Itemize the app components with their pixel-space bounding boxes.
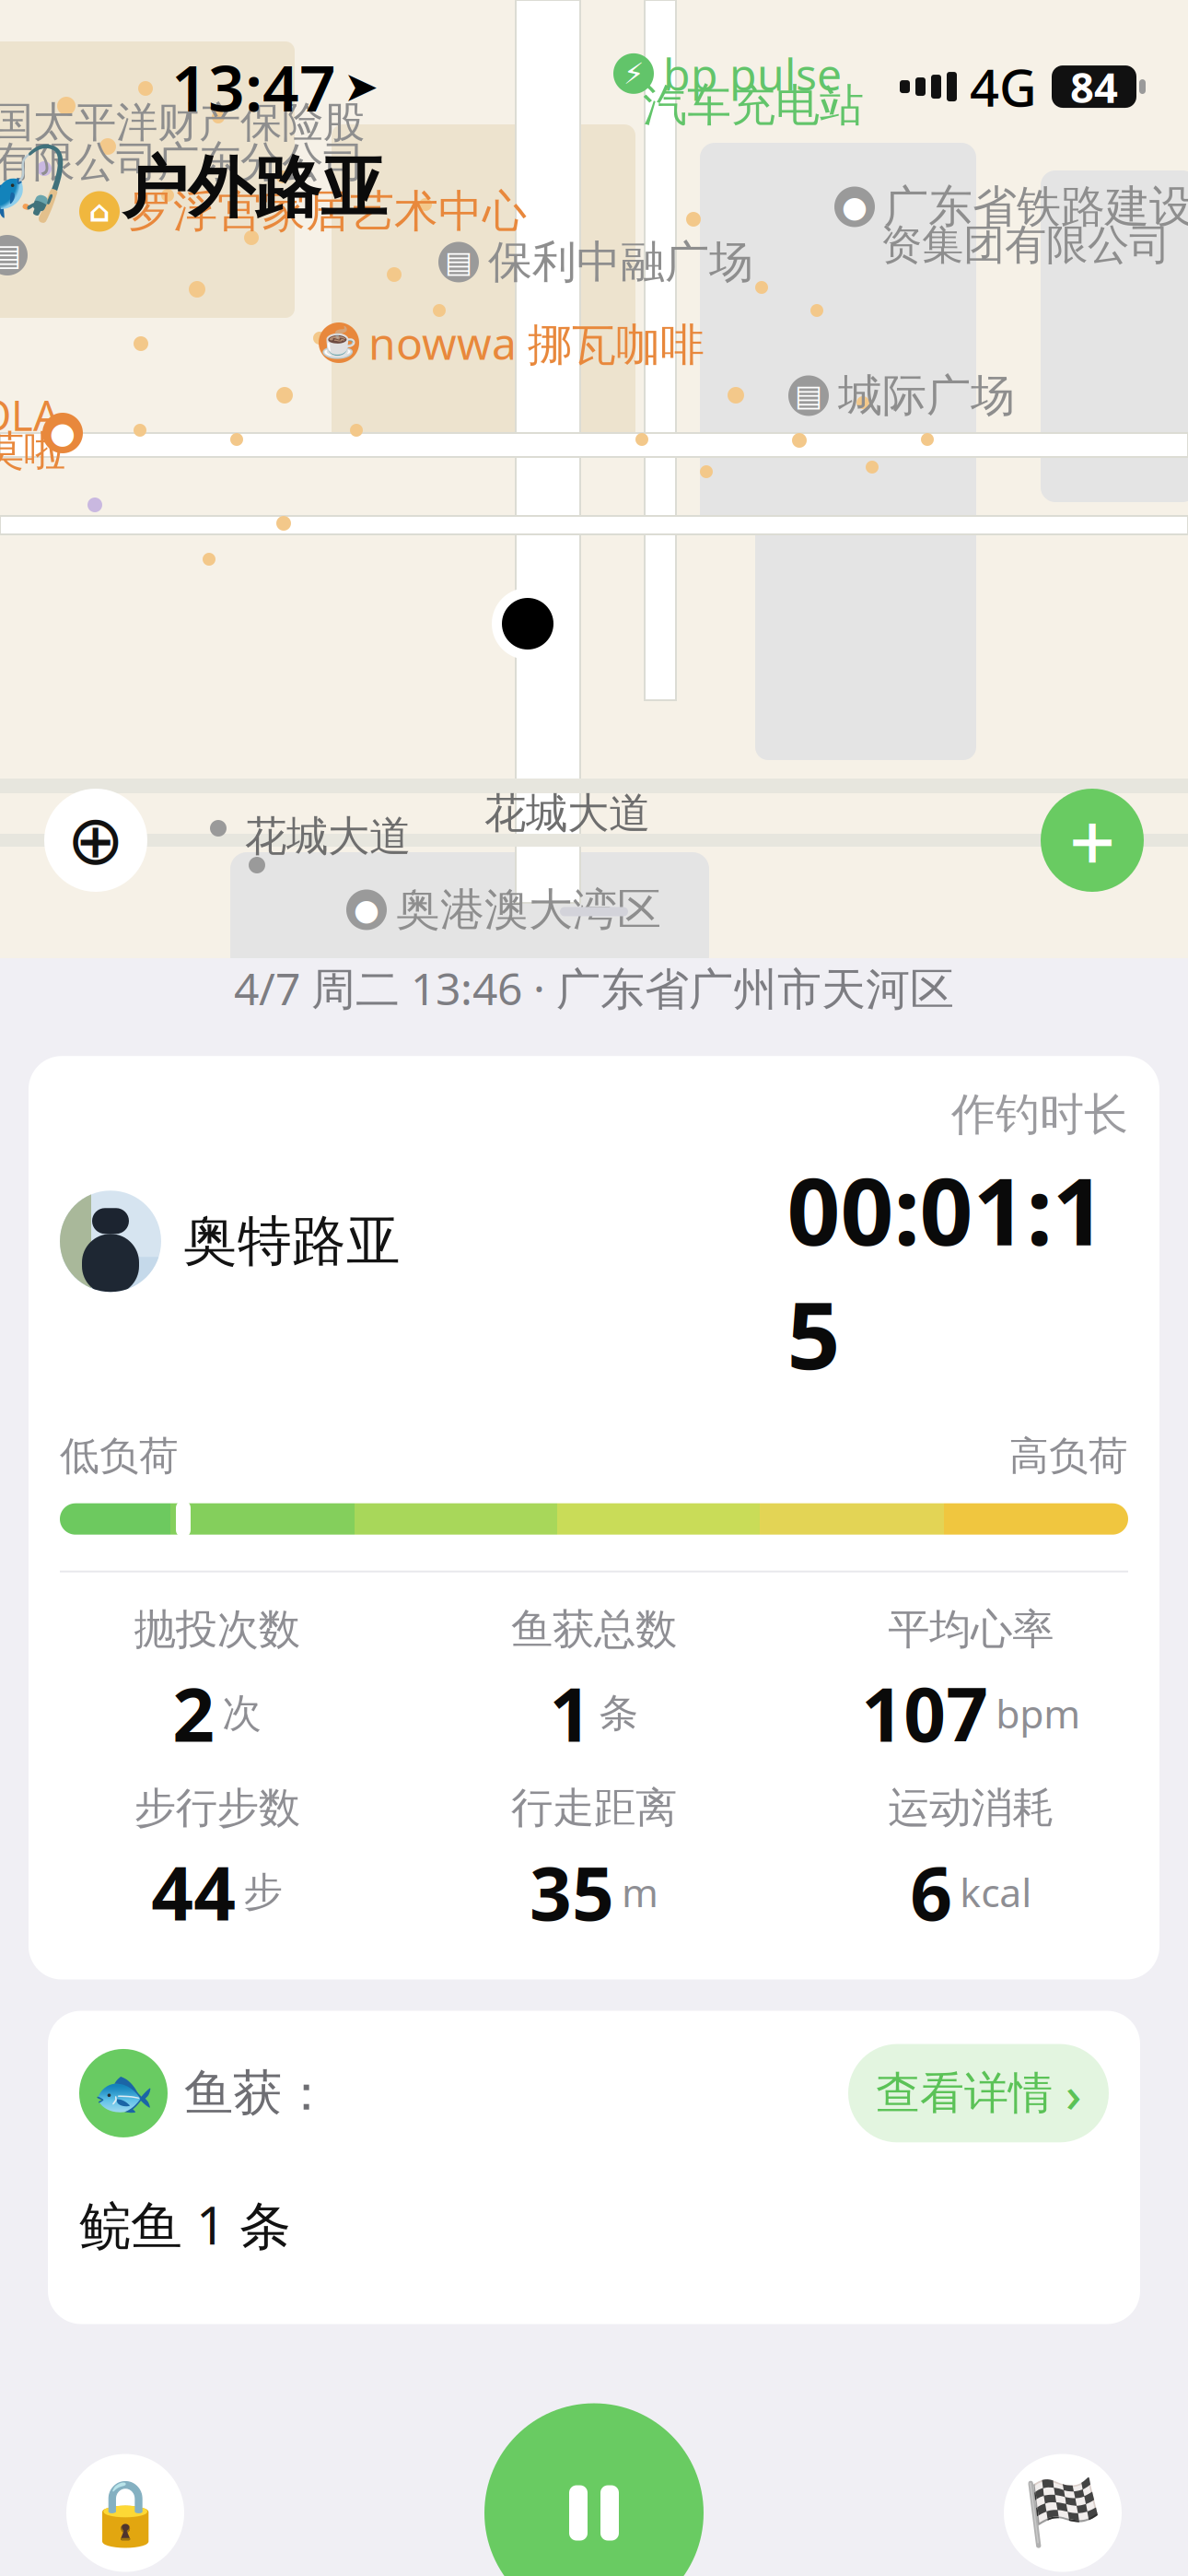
staticText: 35 [530, 1843, 614, 1941]
staticText: 行走距离 [511, 1782, 677, 1834]
staticText: 份有限公司广东分公司 [0, 136, 365, 188]
staticText: 107 [861, 1664, 988, 1762]
button[interactable]: 查看详情 [848, 2044, 1109, 2142]
staticText: 户外路亚 [122, 147, 387, 229]
staticText: 奥特路亚 [183, 1208, 401, 1274]
staticText: 鱼获总数 [511, 1604, 677, 1655]
staticText: 鲩鱼 1 条 [79, 2190, 291, 2259]
staticText: nowwa 挪瓦咖啡 [368, 313, 705, 372]
staticText: 查看详情 [876, 2066, 1053, 2120]
staticText: 低负荷 [60, 1432, 179, 1480]
staticText: ➤ [344, 63, 379, 110]
staticText: 罗浮宫家居艺术中心 [129, 184, 527, 239]
button[interactable]: Add record [1041, 789, 1144, 892]
button[interactable]: Pause session [484, 2403, 704, 2576]
button[interactable]: Lock screen [66, 2454, 184, 2572]
staticText: ▤ [0, 238, 21, 272]
staticText: 84 [1070, 59, 1118, 114]
staticText: ☕ [320, 326, 357, 360]
staticText: 作钓时长 [951, 1087, 1128, 1142]
staticText: ● [354, 893, 379, 926]
staticText: + [1069, 786, 1115, 894]
staticText: 汽车充电站 [643, 78, 864, 133]
staticText: 城际广场 [838, 369, 1015, 423]
staticText: 中国太平洋财产保险股 [0, 97, 365, 148]
staticText: 🏁 [1023, 2476, 1102, 2549]
staticText: 运动消耗 [888, 1782, 1054, 1834]
staticText: 00:01:15 [787, 1147, 1106, 1395]
staticText: bp pulse [663, 44, 842, 103]
button[interactable]: Center on my location [44, 789, 147, 892]
staticText: 2 [172, 1664, 215, 1762]
staticText: 1 [549, 1664, 592, 1762]
staticText: 广东省铁路建设投 [884, 180, 1188, 234]
staticText: MOLA [0, 387, 60, 442]
staticText: ▤ [795, 379, 822, 412]
staticText: ⌂ [89, 195, 110, 228]
staticText: m [622, 1866, 658, 1918]
staticText: bpm [996, 1687, 1081, 1739]
staticText: ⊕ [67, 801, 125, 879]
staticText: 鱼获： [184, 2063, 331, 2123]
staticText: kcal [960, 1866, 1032, 1918]
staticText: ▤ [445, 245, 472, 279]
staticText: 资集团有限公司 [880, 219, 1171, 271]
staticText: 4/7 周二 13:46 · 广东省广州市天河区 [234, 959, 954, 1017]
staticText: 🔒 [86, 2476, 165, 2549]
staticText: 🎣 [0, 143, 71, 224]
staticText: ● [842, 190, 868, 224]
staticText: 花城大道 [245, 811, 411, 862]
staticText: 44 [151, 1843, 236, 1941]
staticText: 次 [222, 1689, 262, 1737]
staticText: 爱莫啦 [0, 426, 65, 477]
staticText: 高负荷 [1009, 1432, 1128, 1480]
staticText: 抛投次数 [134, 1604, 300, 1655]
staticText: 平均心率 [888, 1604, 1054, 1655]
staticText: 保利中融广场 [488, 235, 753, 289]
staticText: ⚡︎ [623, 57, 644, 90]
staticText: 花城大道 [484, 788, 650, 839]
staticText: 6 [910, 1843, 953, 1941]
staticText: 奥港澳大湾区 [396, 883, 661, 937]
staticText: 步 [243, 1868, 283, 1916]
staticText: › [1066, 2061, 1081, 2126]
staticText: 🐟 [93, 2065, 154, 2121]
staticText: 条 [599, 1689, 639, 1737]
staticText: ● [50, 416, 76, 450]
staticText: 4G [970, 52, 1037, 121]
staticText: 13:47 [171, 44, 336, 129]
button[interactable]: Finish session [1004, 2454, 1122, 2572]
staticText: 步行步数 [134, 1782, 300, 1834]
